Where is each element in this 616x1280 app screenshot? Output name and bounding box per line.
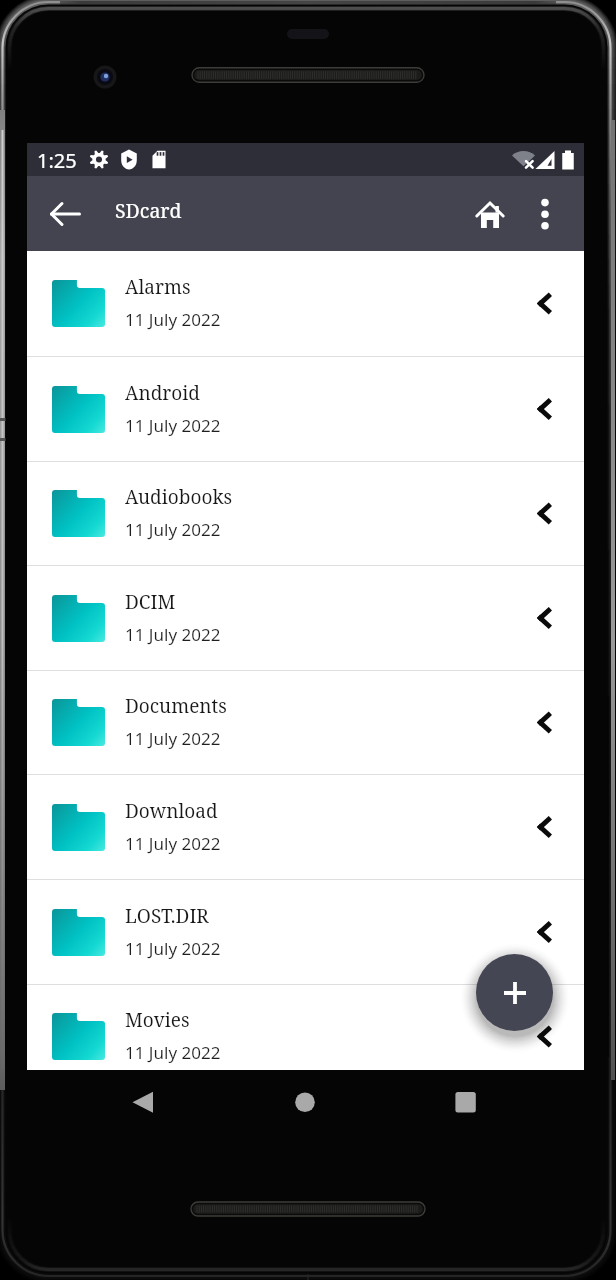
staticText: 11 July 2022 [125,414,221,437]
staticText: SDcard [115,197,182,224]
button[interactable]: Android [27,357,584,461]
button[interactable]: Movies [27,985,584,1070]
staticText: Audiobooks [125,484,233,510]
staticText: LOST.DIR [125,903,209,929]
staticText: 11 July 2022 [125,518,221,541]
staticText: Android [125,380,200,406]
button[interactable]: Home [461,186,517,242]
staticText: Download [125,798,218,824]
button[interactable]: Documents [27,671,584,774]
staticText: 11 July 2022 [125,623,221,646]
button[interactable]: Download [27,775,584,879]
staticText: 11 July 2022 [125,937,221,960]
staticText: Movies [125,1007,190,1033]
staticText: Alarms [125,274,191,300]
button[interactable]: Back [116,1070,170,1132]
staticText: 11 July 2022 [125,308,221,331]
button[interactable]: DCIM [27,566,584,670]
button[interactable]: More options [517,186,573,242]
button[interactable]: Add [476,954,553,1031]
button[interactable]: Back [37,186,93,242]
button[interactable]: Recent apps [438,1070,492,1132]
staticText: Documents [125,693,227,719]
button[interactable]: Alarms [27,251,584,356]
staticText: 11 July 2022 [125,727,221,750]
staticText: 1:25 [37,147,77,174]
button[interactable]: Audiobooks [27,462,584,565]
staticText: DCIM [125,589,176,615]
staticText: 11 July 2022 [125,1041,221,1064]
staticText: 11 July 2022 [125,832,221,855]
button[interactable]: Home [278,1070,332,1132]
button[interactable]: LOST.DIR [27,880,584,984]
